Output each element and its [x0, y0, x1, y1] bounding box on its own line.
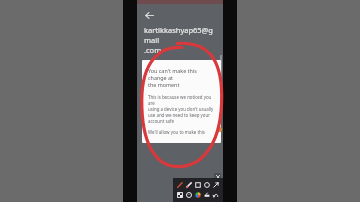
staticText: kartikkashyap65@gmail .com [144, 25, 217, 55]
staticText: We'll allow you to make this change afte… [148, 129, 215, 136]
button[interactable]: Emoji [185, 191, 193, 199]
button[interactable]: Oval [203, 181, 211, 189]
button[interactable]: Blur [176, 191, 184, 199]
button[interactable]: Highlighter [185, 181, 193, 189]
button[interactable]: Eraser [203, 191, 211, 199]
button[interactable]: Arrow [212, 181, 220, 189]
button[interactable]: Close [214, 173, 221, 180]
button[interactable]: Undo [212, 191, 220, 199]
staticText: You can't make this change at the moment [148, 67, 215, 88]
button[interactable]: Rectangle [194, 181, 202, 189]
staticText: You added this email address to these ac… [144, 59, 217, 85]
button[interactable]: Back [142, 8, 156, 22]
button[interactable]: Pen [176, 181, 184, 189]
staticText: This is because we noticed you are using… [148, 94, 215, 124]
button[interactable]: Colour [194, 191, 202, 199]
